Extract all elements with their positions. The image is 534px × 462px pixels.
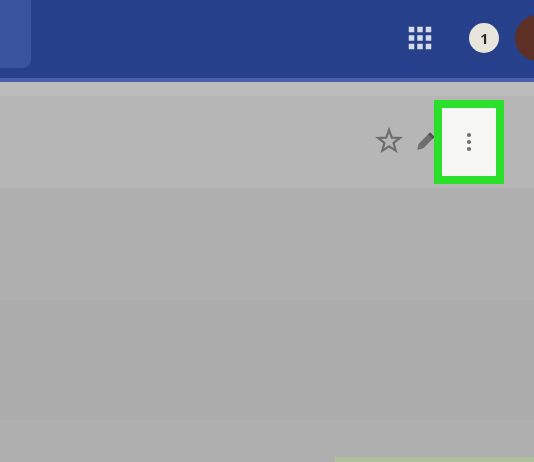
button[interactable]: Google apps	[402, 20, 438, 56]
staticText: 1	[480, 28, 489, 48]
button[interactable]: Notifications	[469, 23, 499, 53]
button[interactable]: Edit	[409, 126, 441, 158]
button[interactable]: Star	[373, 125, 405, 157]
button[interactable]: More options	[434, 100, 504, 184]
